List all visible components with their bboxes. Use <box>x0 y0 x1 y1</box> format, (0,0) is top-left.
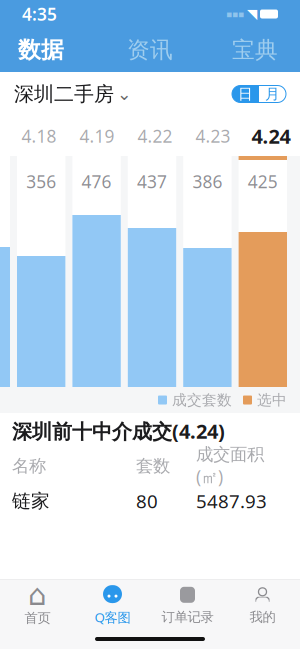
staticText: 80 <box>136 489 158 513</box>
staticText: 4.23 <box>195 124 230 147</box>
button[interactable]: 4.24 <box>242 123 300 149</box>
staticText: 月 <box>265 85 280 103</box>
button[interactable]: 深圳二手房 <box>14 82 132 106</box>
staticText: 套数 <box>136 455 170 477</box>
staticText: 资讯 <box>127 36 173 64</box>
button[interactable]: ⌂ <box>0 580 75 629</box>
staticText: 首页 <box>24 610 50 626</box>
button[interactable]: 4.23 <box>184 124 242 147</box>
button[interactable]: 日 <box>232 85 259 102</box>
staticText: 4.22 <box>137 124 172 147</box>
staticText: 深圳二手房 <box>14 82 114 106</box>
staticText: 356 <box>26 170 56 193</box>
staticText: 我的 <box>249 609 275 625</box>
staticText: 4.19 <box>79 124 114 147</box>
staticText: 成交套数 <box>172 391 232 409</box>
button[interactable]: 宝典 <box>200 28 300 72</box>
button[interactable]: 4.22 <box>126 124 184 147</box>
staticText: 宝典 <box>232 36 278 64</box>
staticText: 日 <box>238 85 253 103</box>
staticText: 4.24 <box>251 123 290 149</box>
staticText: 476 <box>82 170 112 193</box>
staticText: 数据 <box>18 36 64 64</box>
staticText: 订单记录 <box>161 609 213 625</box>
button[interactable]: 4.19 <box>68 124 126 147</box>
staticText: 链家 <box>12 489 50 512</box>
staticText: 437 <box>137 170 167 193</box>
button[interactable]: 我的 <box>225 580 300 629</box>
staticText: 386 <box>192 170 222 193</box>
staticText: 5487.93 <box>196 489 267 513</box>
staticText: 425 <box>248 170 278 193</box>
staticText: 名称 <box>12 455 46 477</box>
button[interactable]: 4.18 <box>10 124 68 147</box>
staticText: ⌂ <box>28 578 47 611</box>
button[interactable]: Q客图 <box>75 580 150 629</box>
staticText: Q客图 <box>94 608 130 626</box>
staticText: 选中 <box>257 391 287 409</box>
button[interactable]: 订单记录 <box>150 580 225 629</box>
button[interactable]: 月 <box>259 85 286 102</box>
staticText: ⌄ <box>117 84 132 104</box>
button[interactable]: 数据 <box>0 28 100 72</box>
staticText: ◥ <box>247 6 257 21</box>
staticText: 4:35 <box>22 2 57 25</box>
staticText: 深圳前十中介成交(4.24) <box>12 418 225 444</box>
staticText: ▪▪▪ <box>226 9 244 19</box>
staticText: 成交面积(㎡) <box>196 444 264 488</box>
button[interactable]: 资讯 <box>100 28 200 72</box>
staticText: 4.18 <box>21 124 56 147</box>
